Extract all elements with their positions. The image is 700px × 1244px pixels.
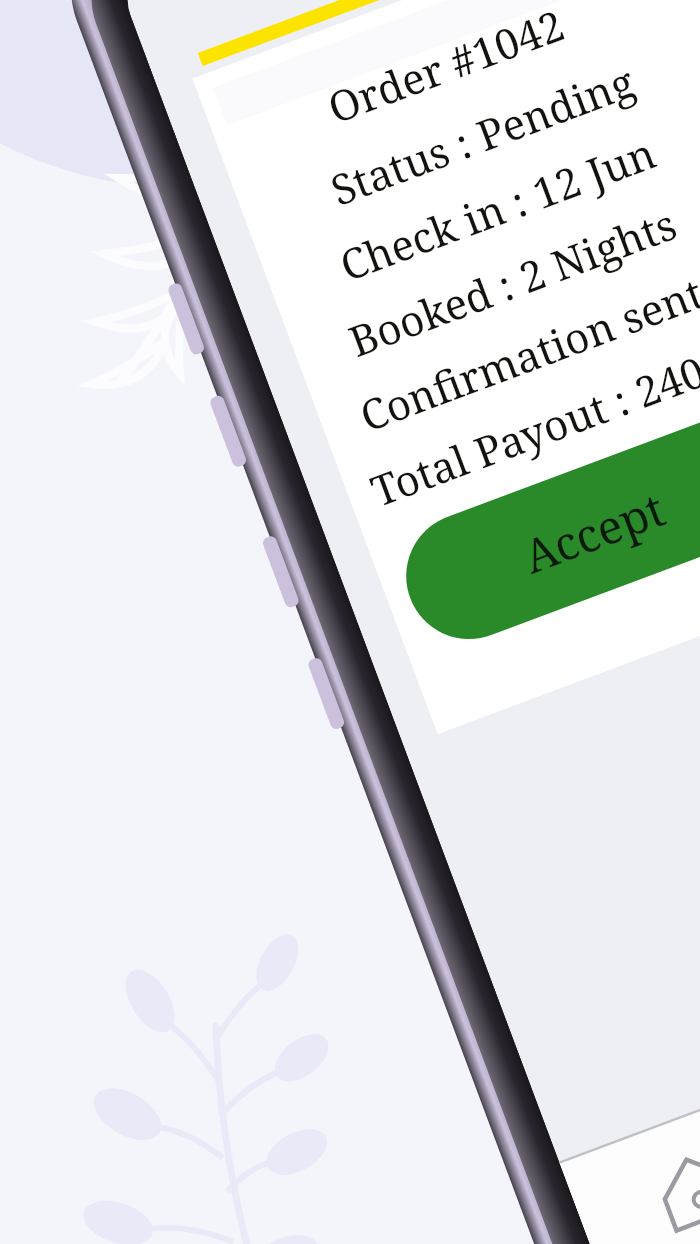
- button[interactable]: Order detail preview: [0, 0, 700, 1244]
